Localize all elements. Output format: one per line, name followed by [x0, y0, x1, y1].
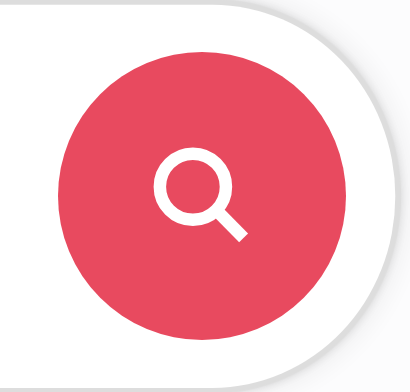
button[interactable]: Search — [58, 52, 346, 340]
